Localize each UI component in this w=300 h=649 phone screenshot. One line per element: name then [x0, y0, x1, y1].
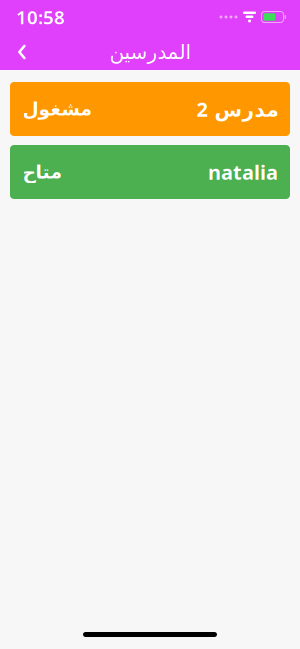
- staticText: 10:58: [16, 5, 65, 29]
- button[interactable]: Back: [0, 34, 44, 70]
- button[interactable]: مشغول: [10, 82, 290, 136]
- button[interactable]: متاح: [10, 145, 290, 199]
- staticText: متاح: [22, 161, 62, 183]
- staticText: مدرس 2: [196, 96, 278, 122]
- staticText: مشغول: [22, 98, 92, 120]
- staticText: المدرسين: [109, 41, 191, 63]
- staticText: natalia: [208, 159, 278, 185]
